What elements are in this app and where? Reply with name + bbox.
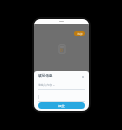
staticText: 填写信息 <box>38 74 53 79</box>
button[interactable]: 请输入内容 … <box>38 83 85 90</box>
button[interactable]: 选择 <box>74 31 85 36</box>
button[interactable]: Close <box>81 75 85 79</box>
staticText: | <box>38 95 40 99</box>
button[interactable]: | <box>38 95 85 102</box>
staticText: 请输入内容 … <box>38 83 55 87</box>
staticText: 选择 <box>77 32 83 35</box>
button[interactable]: 提交 <box>38 102 85 109</box>
staticText: 提交 <box>58 104 65 108</box>
